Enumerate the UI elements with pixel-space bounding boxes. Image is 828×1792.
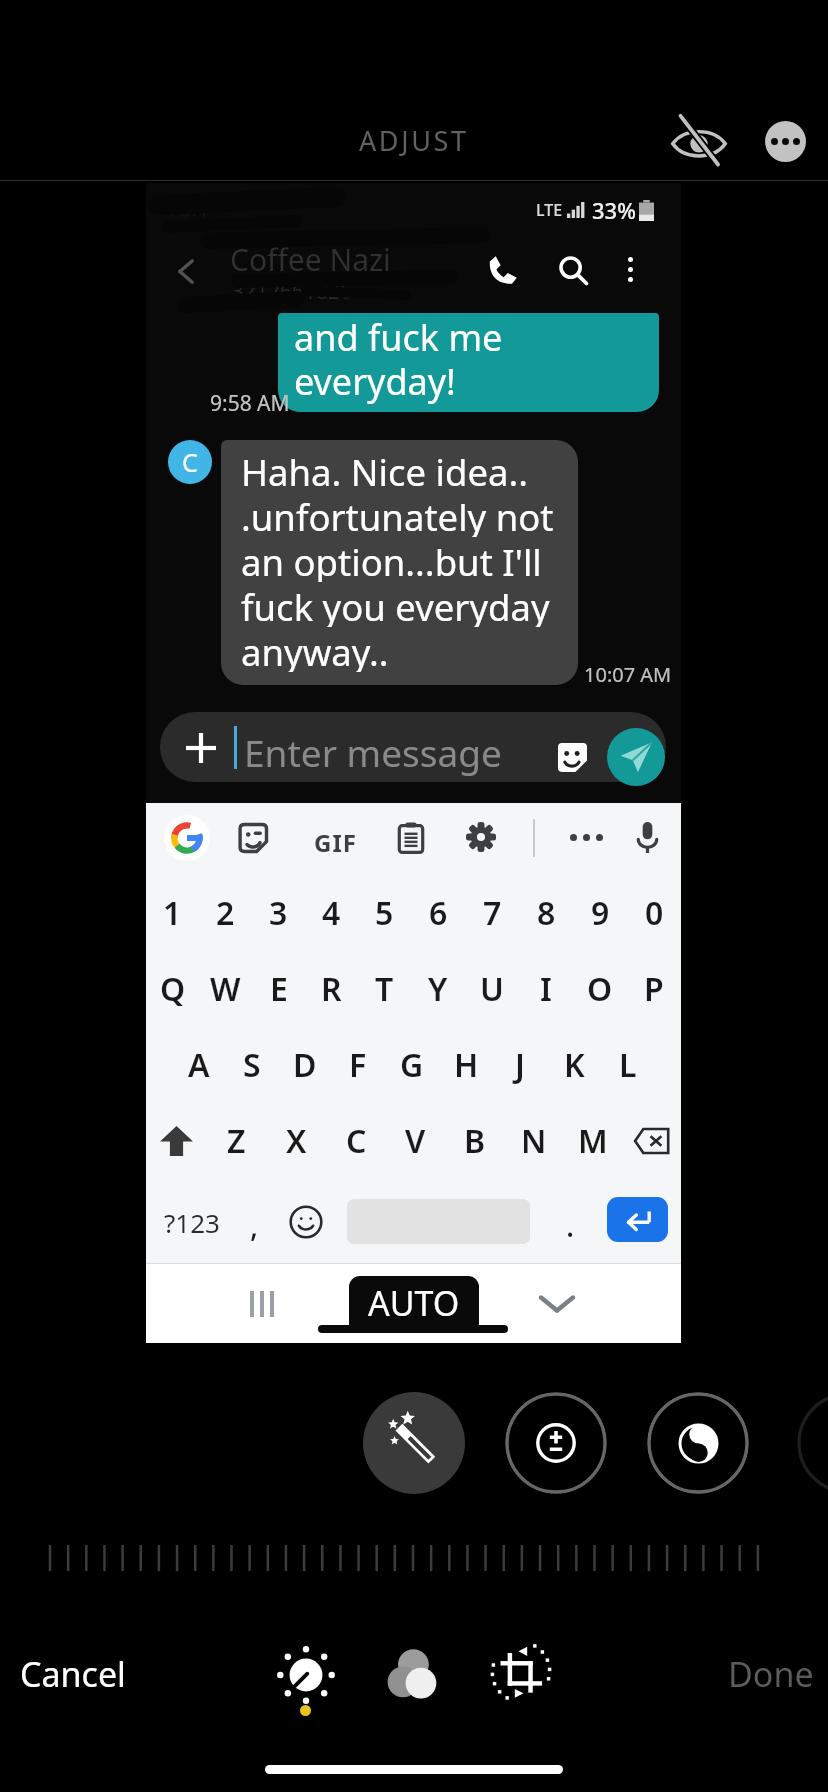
button[interactable]: Auto enhance [363, 1392, 465, 1494]
button[interactable]: Crop [481, 1635, 561, 1715]
staticText: C [182, 445, 198, 479]
staticText: T [375, 967, 394, 1011]
button[interactable]: Hide [665, 107, 733, 175]
staticText: 0 [645, 891, 664, 935]
staticText: 9:58 AM [210, 389, 290, 418]
staticText: G [400, 1043, 424, 1087]
button[interactable]: 2 [199, 875, 252, 951]
button[interactable]: Brightness [505, 1392, 607, 1494]
button[interactable]: B [445, 1103, 504, 1179]
button[interactable]: Photo preview [146, 183, 681, 1343]
button[interactable]: N [504, 1103, 563, 1179]
button[interactable]: Send [607, 728, 665, 786]
staticText: F [349, 1043, 367, 1087]
button[interactable]: S [225, 1027, 278, 1103]
button[interactable]: Hide keyboard [529, 1276, 585, 1332]
staticText: , [250, 1205, 259, 1246]
staticText: 5 [375, 891, 394, 935]
staticText: Y [428, 967, 448, 1011]
button[interactable]: C [326, 1103, 386, 1179]
staticText: O [587, 967, 613, 1011]
button[interactable]: Contrast [647, 1392, 749, 1494]
button[interactable]: D [278, 1027, 331, 1103]
button[interactable]: Z [206, 1103, 266, 1179]
staticText: an option...but I'll [241, 537, 542, 582]
button[interactable]: I [519, 951, 573, 1027]
button[interactable]: Saturation [797, 1392, 828, 1494]
button[interactable]: 5 [358, 875, 411, 951]
button[interactable]: U [465, 951, 519, 1027]
staticText: N [521, 1119, 547, 1163]
button[interactable]: Filters [374, 1635, 454, 1715]
button[interactable]: 3 [252, 875, 305, 951]
button[interactable]: E [252, 951, 305, 1027]
button[interactable]: P [627, 951, 681, 1027]
button[interactable]: L [601, 1027, 655, 1103]
staticText: 7 [483, 891, 502, 935]
staticText: and fuck me [294, 313, 503, 362]
button[interactable]: J [493, 1027, 547, 1103]
button[interactable]: R [305, 951, 358, 1027]
staticText: 9 [591, 891, 610, 935]
button[interactable]: Cancel [20, 1651, 126, 1697]
staticText: A [188, 1043, 210, 1087]
button[interactable]: Backspace [622, 1103, 681, 1179]
button[interactable]: H [439, 1027, 493, 1103]
staticText: Enter message [244, 727, 502, 777]
staticText: 33% [592, 195, 636, 225]
button[interactable]: V [386, 1103, 445, 1179]
staticText: B [464, 1119, 486, 1163]
button[interactable]: 7 [465, 875, 519, 951]
button[interactable]: F [331, 1027, 385, 1103]
button[interactable]: T [358, 951, 411, 1027]
button[interactable]: Intensity slider [0, 1520, 828, 1590]
button[interactable]: K [547, 1027, 601, 1103]
button[interactable]: Recent apps [234, 1276, 290, 1332]
staticText: W [210, 967, 241, 1011]
button[interactable]: O [573, 951, 627, 1027]
staticText: 10:07 AM [584, 661, 672, 688]
staticText: C [346, 1119, 367, 1163]
button[interactable]: , [250, 1205, 259, 1246]
button[interactable]: M [563, 1103, 622, 1179]
button[interactable]: G [385, 1027, 439, 1103]
button[interactable]: 1 [146, 875, 199, 951]
staticText: P [644, 967, 664, 1011]
button[interactable]: More options [751, 107, 819, 175]
button[interactable]: 9 [573, 875, 627, 951]
button[interactable]: Y [411, 951, 465, 1027]
button[interactable]: Enter [607, 1197, 668, 1242]
staticText: LTE [536, 199, 563, 221]
staticText: 8 [537, 891, 556, 935]
staticText: S [243, 1043, 261, 1087]
staticText: fuck you everyday [241, 582, 550, 627]
button[interactable]: Shift [146, 1103, 206, 1179]
staticText: J [515, 1043, 525, 1087]
staticText: E [270, 967, 288, 1011]
button[interactable]: Done [728, 1651, 814, 1697]
button[interactable]: Emoji [289, 1205, 323, 1239]
staticText: R [321, 967, 342, 1011]
staticText: L [619, 1043, 637, 1087]
staticText: H [454, 1043, 479, 1087]
button[interactable]: A [172, 1027, 225, 1103]
button[interactable]: Stickers [558, 743, 587, 772]
staticText: . [566, 1205, 575, 1246]
staticText: Q [160, 967, 186, 1011]
button[interactable]: 8 [519, 875, 573, 951]
staticText: I [540, 967, 552, 1011]
staticText: .unfortunately not [241, 492, 554, 537]
button[interactable]: ?123 [164, 1205, 220, 1240]
button[interactable]: X [266, 1103, 326, 1179]
button[interactable]: 6 [411, 875, 465, 951]
button[interactable]: 4 [305, 875, 358, 951]
button[interactable]: W [199, 951, 252, 1027]
button[interactable]: . [566, 1205, 575, 1246]
button[interactable]: Q [146, 951, 199, 1027]
button[interactable]: Adjust [266, 1635, 346, 1715]
button[interactable]: 0 [627, 875, 681, 951]
staticText: 6 [429, 891, 448, 935]
button[interactable]: Google [164, 815, 210, 861]
